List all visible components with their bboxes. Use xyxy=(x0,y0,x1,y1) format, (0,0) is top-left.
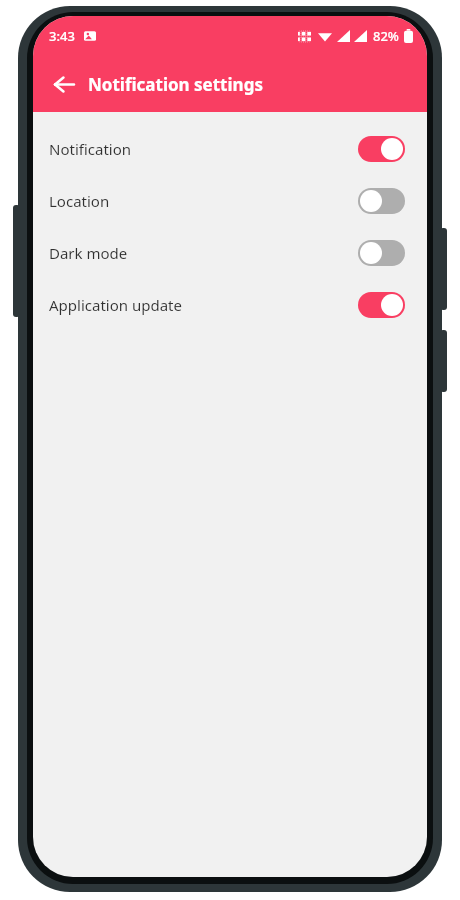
button[interactable]: On xyxy=(358,292,405,318)
staticText: Dark mode xyxy=(49,243,358,263)
button[interactable]: Off xyxy=(358,188,405,214)
button[interactable]: Notification xyxy=(33,123,427,175)
staticText: Notification settings xyxy=(88,73,263,96)
button[interactable]: Back xyxy=(42,62,86,106)
button[interactable]: Off xyxy=(358,240,405,266)
staticText: Application update xyxy=(49,295,358,315)
button[interactable]: Dark mode xyxy=(33,227,427,279)
staticText: Notification xyxy=(49,139,358,159)
staticText: 82% xyxy=(373,27,399,45)
button[interactable]: Application update xyxy=(33,279,427,331)
staticText: 3:43 xyxy=(49,27,75,45)
button[interactable]: On xyxy=(358,136,405,162)
button[interactable]: Location xyxy=(33,175,427,227)
staticText: Location xyxy=(49,191,358,211)
